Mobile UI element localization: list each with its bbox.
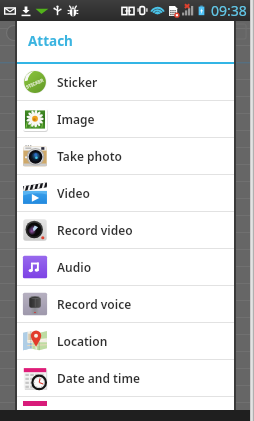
button[interactable] bbox=[17, 397, 234, 410]
staticText: Record video bbox=[57, 222, 133, 238]
staticText: Sticker bbox=[57, 74, 98, 90]
button[interactable]: Audio bbox=[17, 249, 234, 285]
button[interactable]: Location bbox=[17, 323, 234, 359]
button[interactable]: STICKER bbox=[17, 64, 234, 100]
staticText: Take photo bbox=[57, 148, 122, 164]
staticText: Date and time bbox=[57, 370, 140, 386]
staticText: Image bbox=[57, 111, 95, 127]
staticText: Location bbox=[57, 333, 108, 349]
staticText: Video bbox=[57, 185, 90, 201]
button[interactable]: Record video bbox=[17, 212, 234, 248]
staticText: Record voice bbox=[57, 296, 132, 312]
button[interactable]: Video bbox=[17, 175, 234, 211]
staticText: Audio bbox=[57, 259, 92, 275]
button[interactable]: Date and time bbox=[17, 360, 234, 396]
button[interactable]: Image bbox=[17, 101, 234, 137]
staticText: Attach bbox=[28, 32, 73, 50]
staticText: 09:38 bbox=[211, 1, 247, 20]
button[interactable]: Record voice bbox=[17, 286, 234, 322]
button[interactable]: Take photo bbox=[17, 138, 234, 174]
staticText: STICKER bbox=[25, 76, 45, 90]
